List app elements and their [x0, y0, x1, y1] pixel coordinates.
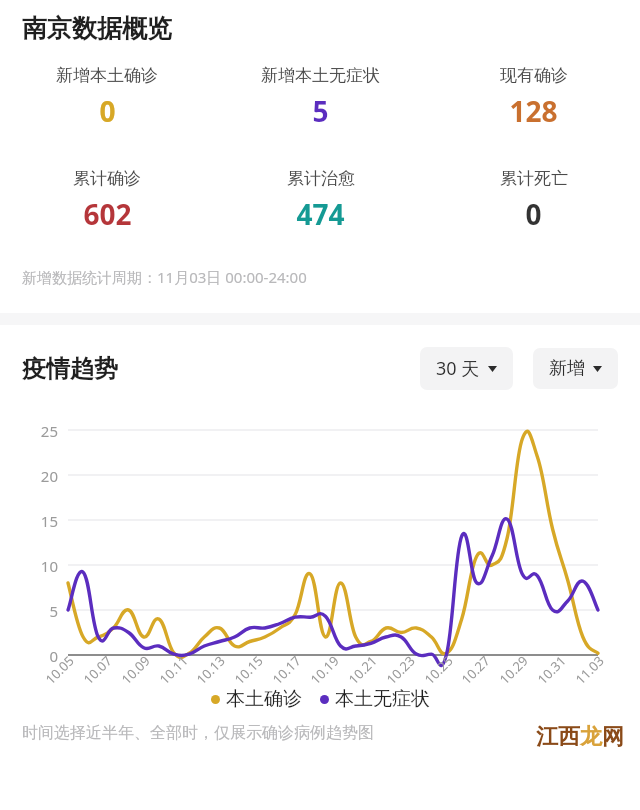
staticText: 10.17: [268, 651, 304, 687]
staticText: 现有确诊: [500, 65, 568, 86]
staticText: 30 天: [436, 356, 480, 381]
staticText: 10.13: [192, 651, 228, 687]
button[interactable]: 本土无症状: [320, 687, 430, 711]
staticText: 474: [296, 195, 345, 233]
staticText: 10.25: [420, 651, 456, 687]
staticText: 0: [99, 92, 116, 130]
staticText: 累计死亡: [500, 168, 568, 189]
staticText: 10.15: [230, 651, 266, 687]
button[interactable]: 新增: [533, 348, 618, 389]
staticText: 新增: [549, 357, 585, 380]
staticText: 疫情趋势: [22, 354, 118, 384]
staticText: 11.03: [571, 651, 607, 687]
staticText: 时间选择近半年、全部时，仅展示确诊病例趋势图: [22, 723, 374, 743]
staticText: 10.23: [382, 651, 418, 687]
staticText: 10: [24, 556, 58, 576]
staticText: 128: [509, 92, 558, 130]
staticText: 龙: [580, 723, 602, 751]
staticText: 新增数据统计周期：11月03日 00:00-24:00: [22, 267, 307, 287]
staticText: 10.09: [117, 651, 153, 687]
staticText: 602: [83, 195, 132, 233]
staticText: 10.05: [41, 651, 77, 687]
staticText: 新增本土确诊: [56, 65, 158, 86]
button[interactable]: 本土确诊: [211, 687, 302, 711]
staticText: 25: [24, 421, 58, 441]
staticText: 10.11: [155, 651, 191, 687]
staticText: 西: [558, 723, 580, 751]
staticText: 10.31: [533, 651, 569, 687]
staticText: 累计治愈: [287, 168, 355, 189]
staticText: 0: [525, 195, 542, 233]
staticText: 15: [24, 511, 58, 531]
staticText: 10.27: [457, 651, 493, 687]
staticText: 网: [602, 723, 624, 751]
staticText: 0: [24, 646, 58, 666]
staticText: 新增本土无症状: [261, 65, 380, 86]
button[interactable]: 30 天: [420, 347, 513, 390]
staticText: 10.21: [344, 651, 380, 687]
staticText: 累计确诊: [73, 168, 141, 189]
staticText: 本土确诊: [226, 687, 302, 711]
staticText: 10.29: [495, 651, 531, 687]
staticText: 10.07: [79, 651, 115, 687]
staticText: 5: [24, 601, 58, 621]
staticText: 5: [312, 92, 329, 130]
staticText: 本土无症状: [335, 687, 430, 711]
staticText: 江: [536, 723, 558, 751]
staticText: 20: [24, 466, 58, 486]
staticText: 南京数据概览: [22, 13, 172, 44]
staticText: 10.19: [306, 651, 342, 687]
